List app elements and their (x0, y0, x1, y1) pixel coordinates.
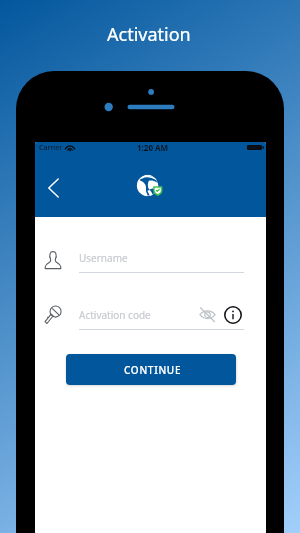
staticText: Activation (107, 22, 191, 47)
button[interactable]: Show activation code (196, 303, 218, 325)
staticText: Username (79, 251, 128, 265)
button[interactable]: CONTINUE (66, 354, 236, 385)
staticText: Activation code (79, 308, 151, 322)
button[interactable]: Back (38, 173, 68, 203)
staticText: 1:20 AM (137, 142, 169, 153)
staticText: Carrier (39, 143, 63, 153)
staticText: CONTINUE (124, 363, 182, 377)
button[interactable]: Information (223, 305, 242, 324)
